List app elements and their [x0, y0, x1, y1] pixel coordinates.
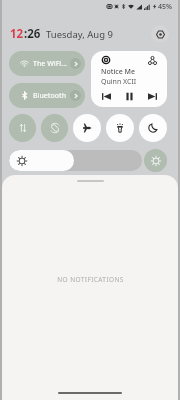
button[interactable]: Flashlight — [106, 114, 134, 142]
button[interactable]: The WiFi... — [9, 51, 85, 76]
button[interactable]: Auto brightness — [144, 149, 167, 172]
button[interactable]: Pause — [122, 89, 136, 103]
button[interactable]: Brightness — [9, 150, 142, 171]
button[interactable]: Cast — [91, 51, 167, 107]
staticText: Tuesday, Aug 9 — [46, 28, 113, 41]
staticText: Bluetooth — [33, 91, 67, 101]
staticText: Notice Me — [101, 67, 135, 77]
other: Cast — [148, 56, 157, 65]
button[interactable]: Next — [145, 89, 159, 103]
button[interactable]: Mobile data — [9, 114, 36, 142]
button[interactable]: Airplane mode — [73, 114, 101, 142]
staticText: Quinn XCII — [101, 77, 137, 87]
button[interactable]: Bluetooth — [9, 83, 85, 108]
staticText: NO NOTIFICATIONS — [57, 275, 124, 284]
button[interactable]: Auto rotate — [41, 114, 68, 142]
staticText: :26 — [24, 26, 41, 42]
button[interactable]: Dark mode — [139, 114, 167, 142]
button[interactable]: Previous — [99, 89, 113, 103]
staticText: 45% — [158, 2, 172, 12]
button[interactable]: Settings — [151, 25, 169, 43]
staticText: 12 — [10, 26, 24, 42]
staticText: The WiFi... — [33, 59, 67, 69]
